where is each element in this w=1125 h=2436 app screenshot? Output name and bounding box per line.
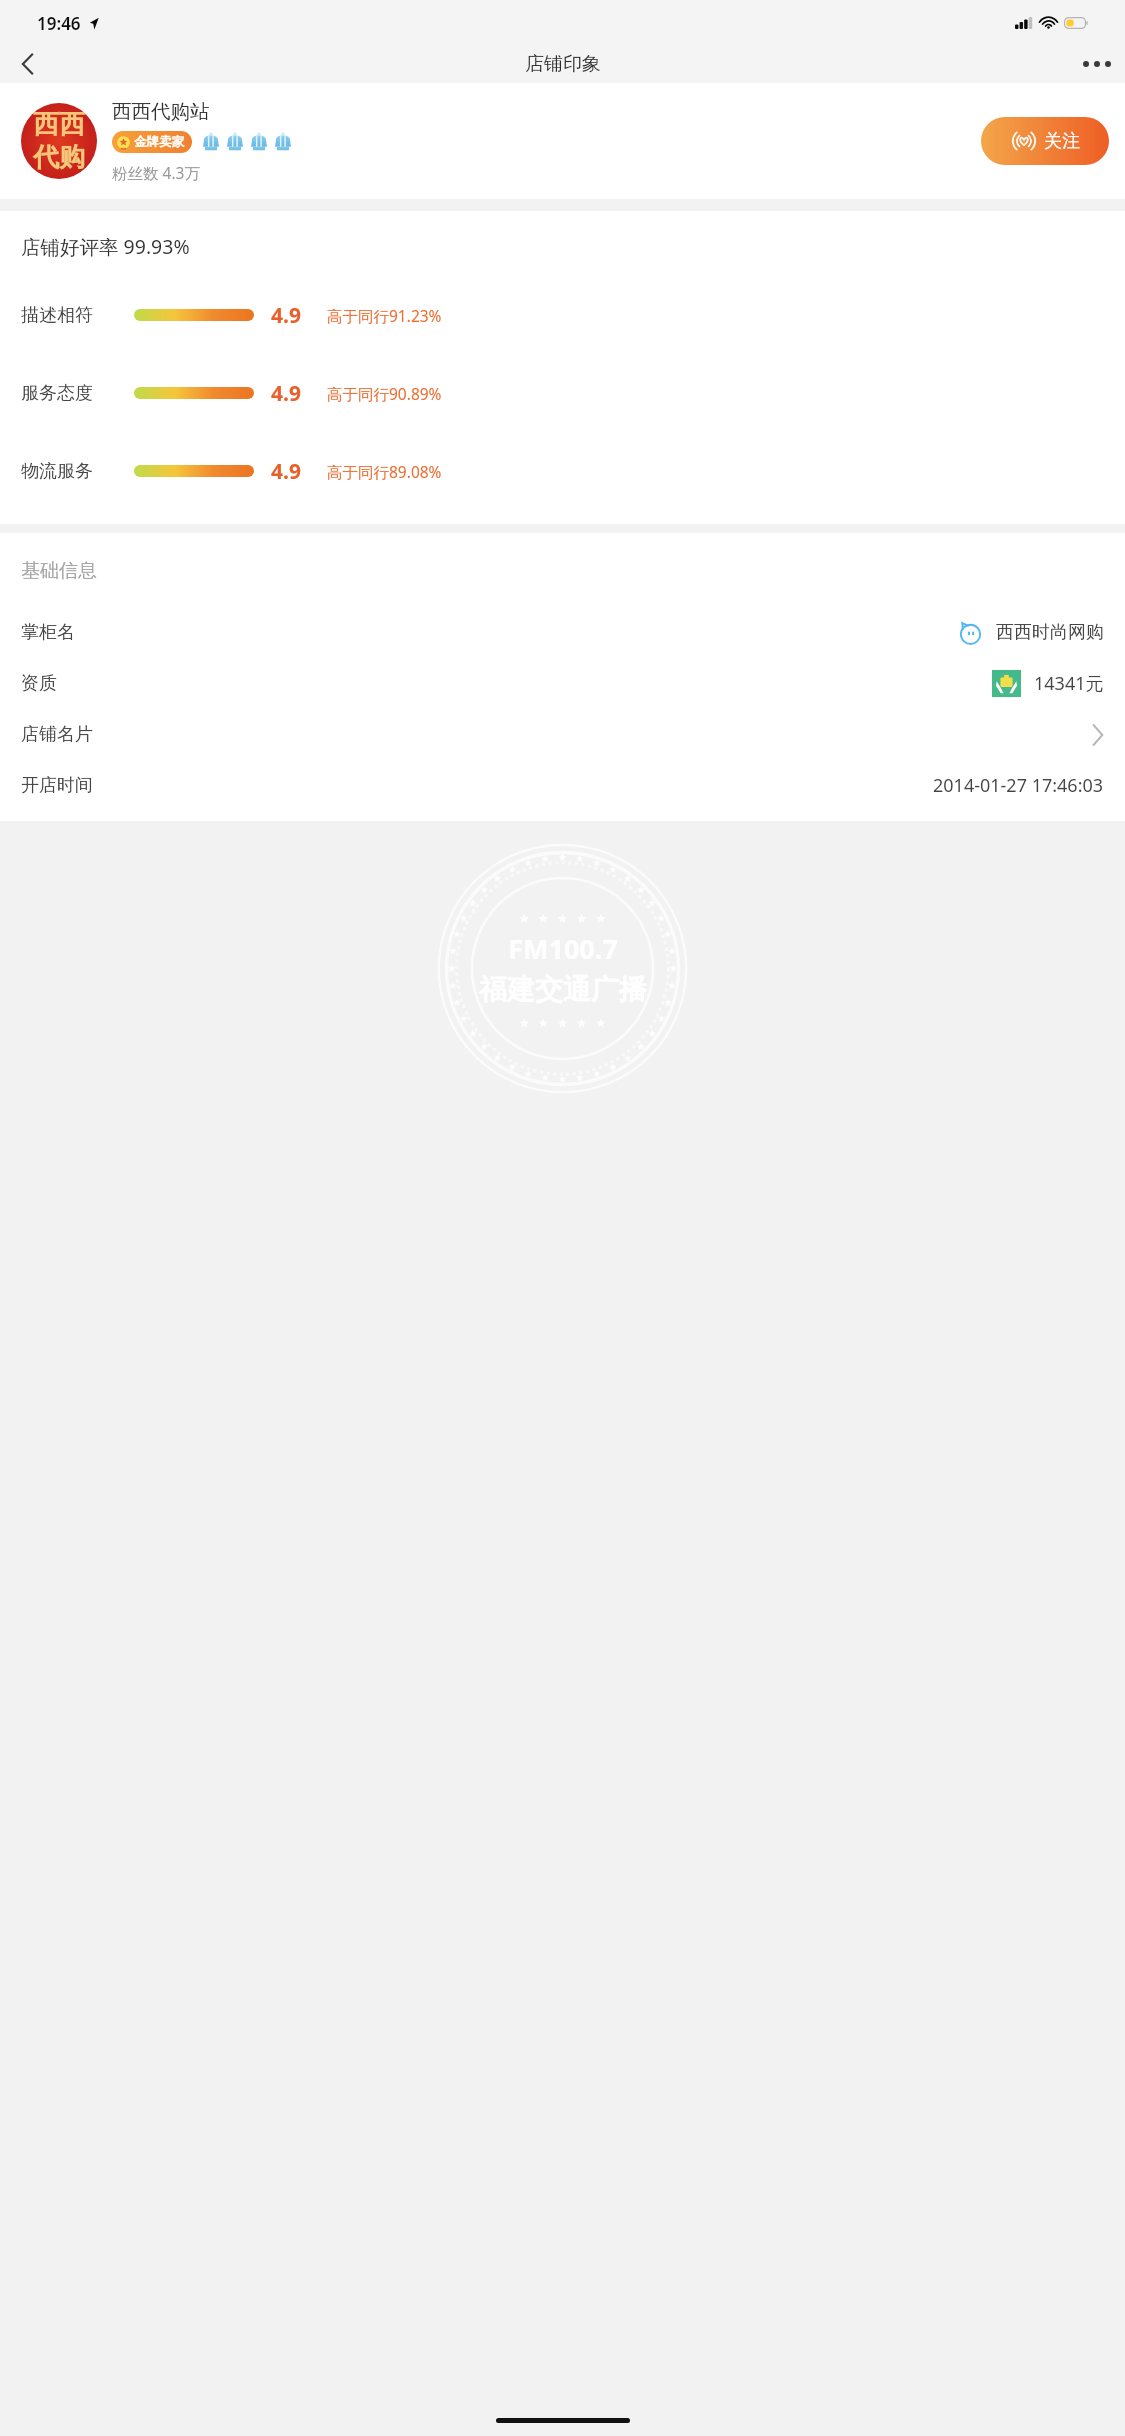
staticText: 西西代购站 — [112, 99, 210, 124]
staticText: 金牌卖家 — [134, 134, 184, 150]
staticText: 14341元 — [1034, 671, 1104, 696]
staticText: 西西时尚网购 — [996, 621, 1104, 644]
staticText: 开店时间 — [21, 774, 93, 797]
staticText: FM100.7 — [508, 930, 618, 967]
staticText: 物流服务 — [21, 460, 134, 483]
staticText: 高于同行90.89% — [327, 383, 442, 404]
staticText: 4.9 — [271, 379, 319, 408]
staticText: 福建交通广播 — [479, 972, 647, 1007]
staticText: 2014-01-27 17:46:03 — [933, 773, 1104, 798]
staticText: 店铺名片 — [21, 723, 93, 746]
staticText: 高于同行91.23% — [327, 305, 442, 326]
staticText: 服务态度 — [21, 382, 134, 405]
button[interactable]: 店铺名片 — [21, 709, 1104, 760]
button[interactable]: Back — [0, 44, 54, 83]
staticText: 4.9 — [271, 457, 319, 486]
staticText: 4.9 — [271, 301, 319, 330]
staticText: 店铺好评率 99.93% — [21, 233, 190, 260]
button[interactable]: 关注 — [981, 117, 1109, 165]
staticText: 基础信息 — [21, 559, 97, 583]
button[interactable]: 掌柜名 — [21, 607, 1104, 658]
staticText: 描述相符 — [21, 304, 134, 327]
staticText: 19:46 — [37, 12, 81, 35]
staticText: 代购 — [33, 141, 85, 174]
button[interactable]: More options — [1069, 44, 1125, 83]
staticText: 店铺印象 — [525, 52, 601, 76]
button[interactable]: 资质 — [21, 658, 1104, 709]
staticText: 粉丝数 4.3万 — [112, 162, 200, 183]
button[interactable]: 金牌卖家 — [112, 131, 192, 153]
staticText: 资质 — [21, 672, 57, 695]
staticText: 掌柜名 — [21, 621, 75, 644]
button[interactable]: Shop avatar — [21, 103, 97, 179]
staticText: 关注 — [1044, 130, 1080, 153]
staticText: 西西 — [33, 108, 85, 141]
staticText: 高于同行89.08% — [327, 461, 442, 482]
button[interactable]: 开店时间 — [21, 760, 1104, 811]
